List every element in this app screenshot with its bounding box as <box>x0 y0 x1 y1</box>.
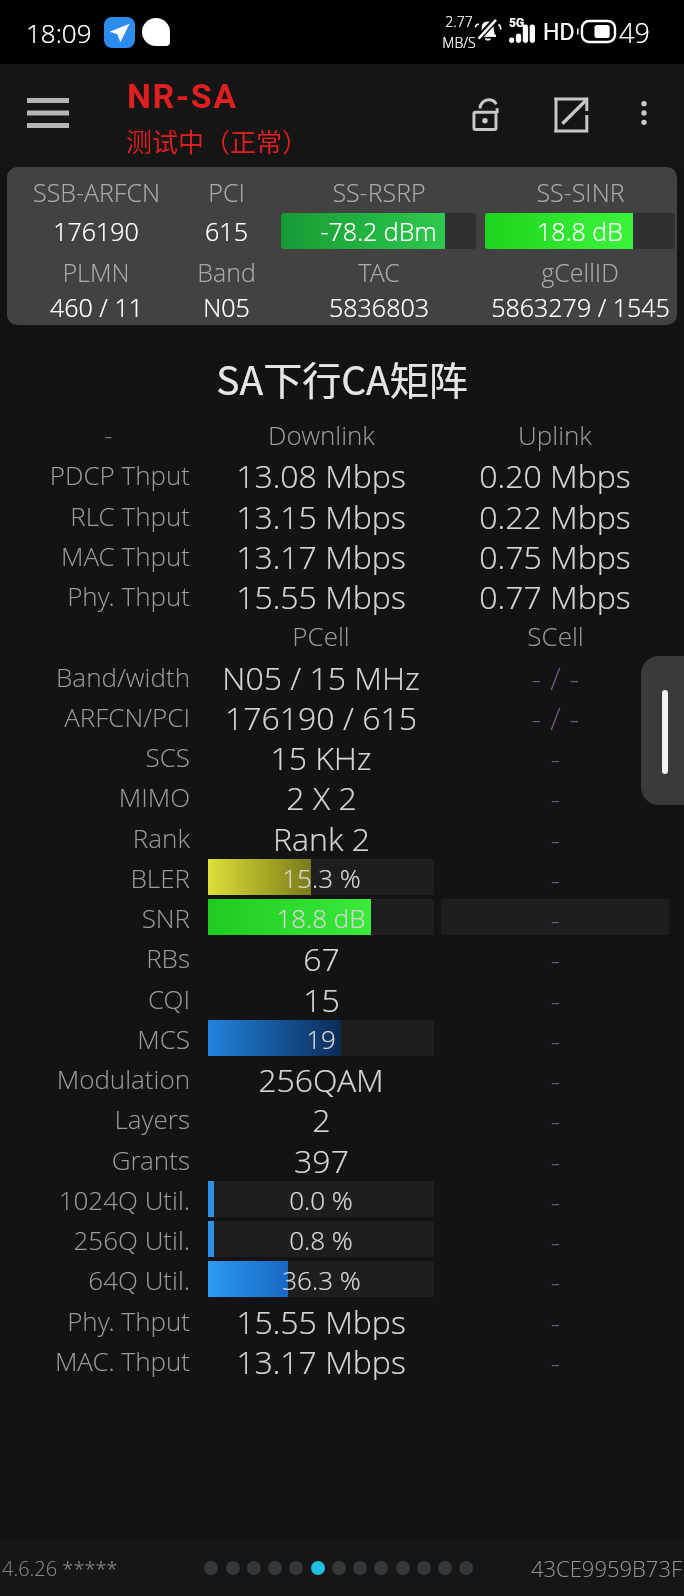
staticText: - <box>550 736 561 776</box>
staticText: 43CE9959B73F <box>530 1553 682 1583</box>
button[interactable]: Page 10 <box>393 1558 413 1578</box>
staticText: - <box>550 1018 561 1058</box>
button[interactable]: Open in new window <box>540 83 604 147</box>
staticText: PCell <box>292 618 350 653</box>
staticText: 5863279 / 1545 <box>491 290 670 324</box>
staticText: HD <box>543 19 575 46</box>
staticText: N05 / 15 MHz <box>222 656 420 696</box>
button[interactable]: Page 2 <box>223 1558 243 1578</box>
button[interactable]: Page 3 <box>244 1558 264 1578</box>
staticText: 15.55 Mbps <box>236 575 406 615</box>
staticText: CQI <box>147 981 190 1016</box>
staticText: - <box>550 1259 561 1299</box>
staticText: 256QAM <box>258 1058 384 1098</box>
staticText: 2.77 <box>440 12 478 31</box>
staticText: - <box>550 776 561 816</box>
staticText: 5836803 <box>329 290 429 324</box>
staticText: - <box>550 937 561 977</box>
staticText: Phy. Thput <box>67 1303 190 1338</box>
staticText: 615 <box>205 214 248 248</box>
staticText: SCS <box>145 739 190 774</box>
staticText: Rank 2 <box>273 817 370 857</box>
staticText: Phy. Thput <box>67 578 190 613</box>
staticText: 49 <box>619 14 650 50</box>
staticText: 18.8 dB <box>485 214 675 248</box>
staticText: 18:09 <box>26 15 92 50</box>
staticText: - <box>550 1300 561 1340</box>
button[interactable]: Page 6 <box>308 1558 328 1578</box>
staticText: BLER <box>130 860 190 895</box>
staticText: RLC Thput <box>70 498 190 533</box>
staticText: 36.3 % <box>282 1262 361 1297</box>
staticText: PCI <box>208 175 245 209</box>
staticText: Downlink <box>268 417 375 452</box>
staticText: 0.0 % <box>289 1182 353 1217</box>
staticText: 0.8 % <box>289 1222 353 1257</box>
staticText: - <box>550 1139 561 1179</box>
staticText: RBs <box>146 940 190 975</box>
staticText: 256Q Util. <box>73 1222 190 1257</box>
staticText: PDCP Thput <box>49 457 190 492</box>
staticText: 397 <box>294 1139 349 1179</box>
staticText: - <box>550 1219 561 1259</box>
staticText: 176190 <box>53 214 139 248</box>
staticText: 15.55 Mbps <box>236 1300 406 1340</box>
staticText: Layers <box>114 1101 190 1136</box>
button[interactable]: Page 9 <box>371 1558 391 1578</box>
staticText: gCellID <box>541 255 619 289</box>
staticText: - <box>550 857 561 897</box>
staticText: MAC Thput <box>61 538 190 573</box>
staticText: 测试中（正常） <box>126 122 309 160</box>
staticText: 15 <box>303 978 340 1018</box>
staticText: SSB-ARFCN <box>33 175 160 209</box>
staticText: - <box>550 1058 561 1098</box>
staticText: 2 <box>312 1098 331 1138</box>
staticText: - <box>550 1340 561 1380</box>
button[interactable]: More options <box>614 83 674 143</box>
button[interactable]: Page 4 <box>265 1558 285 1578</box>
staticText: 0.22 Mbps <box>479 495 631 535</box>
button[interactable]: Page 1 <box>201 1558 221 1578</box>
staticText: - <box>550 1179 561 1219</box>
staticText: -78.2 dBm <box>281 214 476 248</box>
staticText: 2 X 2 <box>286 776 357 816</box>
staticText: 0.77 Mbps <box>479 575 631 615</box>
staticText: 4.6.26 ***** <box>2 1555 118 1582</box>
button[interactable]: Lock <box>456 83 520 147</box>
staticText: SA下行CA矩阵 <box>0 350 684 406</box>
staticText: - / - <box>531 656 580 696</box>
staticText: 176190 / 615 <box>225 696 417 736</box>
staticText: TAC <box>358 255 400 289</box>
staticText: 13.17 Mbps <box>236 1340 406 1380</box>
staticText: 0.20 Mbps <box>479 454 631 494</box>
staticText: - / - <box>531 696 580 736</box>
staticText: 1024Q Util. <box>58 1182 190 1217</box>
staticText: SS-SINR <box>536 175 625 209</box>
staticText: SNR <box>141 900 190 935</box>
button[interactable]: Page 8 <box>350 1558 370 1578</box>
staticText: MIMO <box>118 779 190 814</box>
staticText: 0.75 Mbps <box>479 535 631 575</box>
staticText: 64Q Util. <box>88 1262 190 1297</box>
staticText: - <box>104 417 113 452</box>
button[interactable]: Page 13 <box>456 1558 476 1578</box>
button[interactable]: Page 5 <box>286 1558 306 1578</box>
staticText: - <box>550 978 561 1018</box>
button[interactable]: Menu <box>16 83 80 147</box>
staticText: 13.15 Mbps <box>236 495 406 535</box>
staticText: MCS <box>137 1021 190 1056</box>
staticText: SS-RSRP <box>332 175 426 209</box>
staticText: PLMN <box>62 255 130 289</box>
button[interactable]: Page 11 <box>414 1558 434 1578</box>
staticText: - <box>550 1098 561 1138</box>
button[interactable]: Page 12 <box>435 1558 455 1578</box>
button[interactable]: Page 7 <box>329 1558 349 1578</box>
staticText: 19 <box>306 1021 336 1056</box>
staticText: MAC. Thput <box>54 1343 190 1378</box>
staticText: N05 <box>203 290 250 324</box>
staticText: 460 / 11 <box>50 290 143 324</box>
staticText: 13.08 Mbps <box>236 454 406 494</box>
staticText: Modulation <box>56 1061 190 1096</box>
staticText: ARFCN/PCI <box>64 699 190 734</box>
staticText: 13.17 Mbps <box>236 535 406 575</box>
